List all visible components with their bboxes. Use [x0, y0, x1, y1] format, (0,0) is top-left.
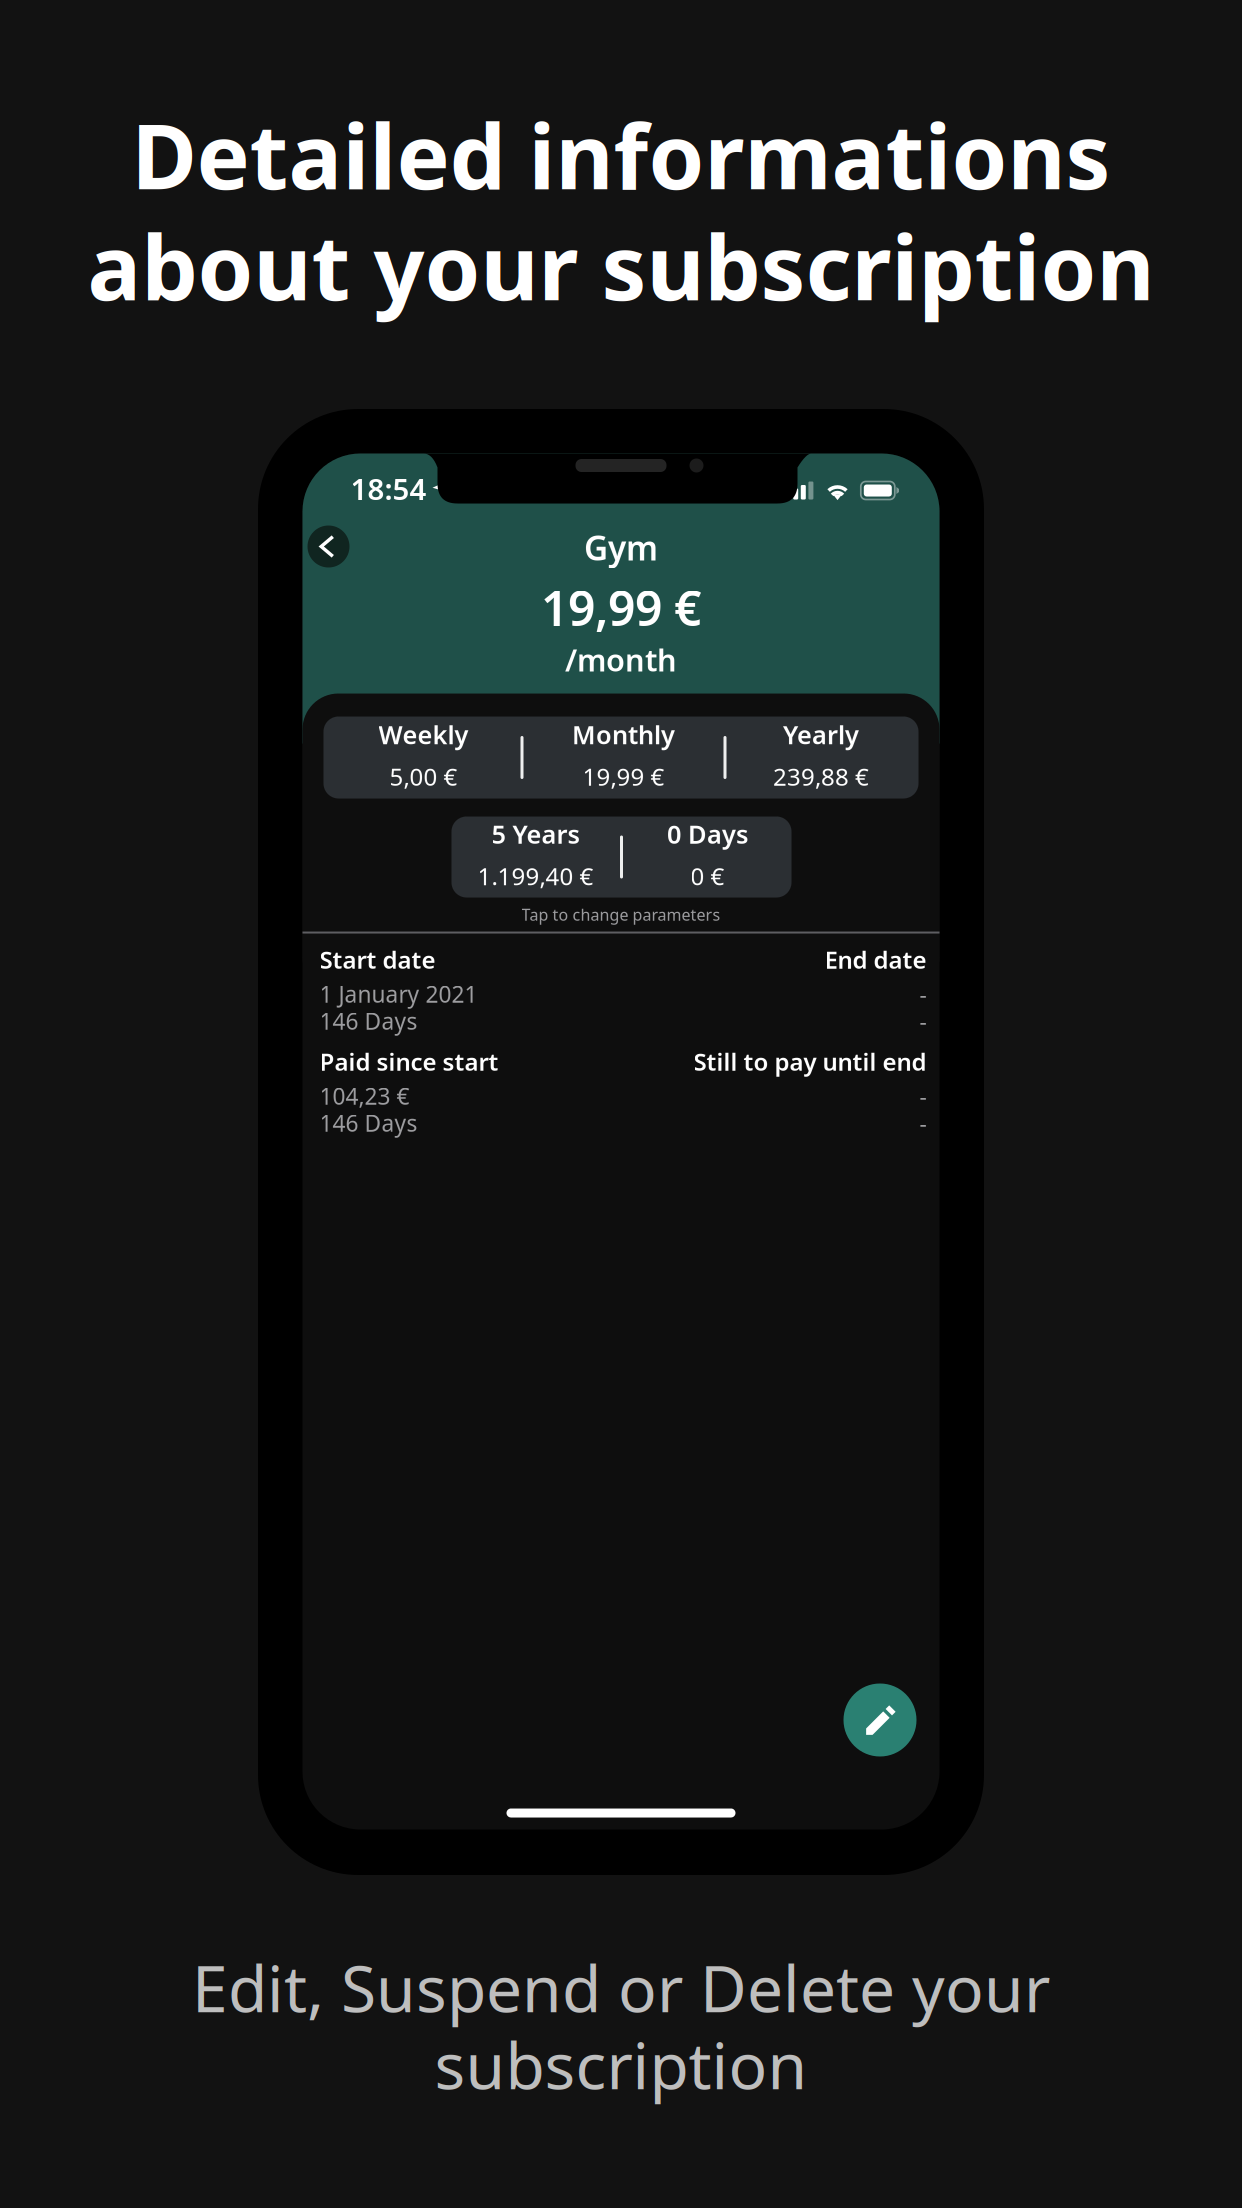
staticText: 146 Days [319, 1006, 417, 1036]
staticText: Start date [319, 944, 435, 975]
staticText: Yearly [783, 718, 859, 751]
staticText: Detailed informations [131, 95, 1110, 214]
staticText: 19,99 € [582, 761, 664, 792]
staticText: 18:54 [350, 469, 426, 508]
staticText: 5,00 € [389, 761, 457, 792]
button[interactable]: Edit [843, 1683, 916, 1756]
staticText: Tap to change parameters [521, 904, 720, 925]
staticText: Still to pay until end [693, 1046, 926, 1077]
staticText: 146 Days [319, 1108, 417, 1138]
staticText: 239,88 € [773, 761, 869, 792]
staticText: - [919, 1108, 926, 1138]
button[interactable]: Back [307, 525, 349, 567]
staticText: Gym [584, 525, 658, 570]
staticText: Edit, Suspend or Delete your [192, 1945, 1050, 2030]
staticText: Weekly [378, 718, 468, 751]
staticText: subscription [434, 2022, 807, 2107]
staticText: 0 Days [667, 817, 748, 851]
staticText: 19,99 € [541, 576, 701, 639]
staticText: 1.199,40 € [477, 860, 593, 892]
staticText: 104,23 € [319, 1081, 409, 1111]
staticText: 5 Years [491, 817, 579, 851]
staticText: - [919, 1006, 926, 1036]
staticText: Paid since start [319, 1046, 498, 1077]
staticText: - [919, 1081, 926, 1111]
button[interactable]: Weekly [323, 716, 918, 798]
staticText: End date [824, 944, 926, 975]
staticText: 0 € [690, 860, 724, 892]
staticText: about your subscription [87, 206, 1154, 325]
staticText: /month [565, 639, 677, 680]
staticText: - [919, 979, 926, 1009]
staticText: Monthly [572, 718, 675, 751]
staticText: 1 January 2021 [319, 979, 477, 1009]
button[interactable]: 5 Years [451, 816, 791, 897]
